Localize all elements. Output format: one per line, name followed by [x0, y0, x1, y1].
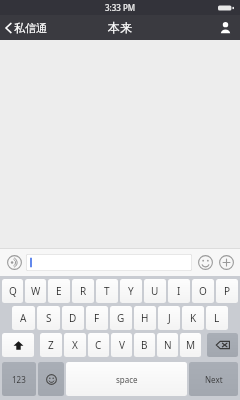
button[interactable]: I [168, 279, 190, 303]
button[interactable]: S [37, 306, 60, 330]
staticText: C [95, 338, 102, 352]
button[interactable]: F [86, 306, 108, 330]
staticText: U [151, 284, 159, 298]
button[interactable]: O [192, 279, 214, 303]
staticText: L [214, 311, 220, 325]
button[interactable]: T [96, 279, 118, 303]
button[interactable]: Voice message [4, 252, 24, 272]
button[interactable]: 私信通 [0, 15, 55, 40]
staticText: I [177, 284, 181, 298]
button[interactable]: R [72, 279, 94, 303]
staticText: Y [128, 284, 134, 298]
staticText: G [117, 311, 125, 325]
button[interactable]: A [12, 306, 35, 330]
staticText: B [141, 338, 148, 352]
button[interactable]: E [48, 279, 70, 303]
button[interactable]: space [66, 362, 187, 396]
staticText: D [69, 311, 77, 325]
staticText: M [186, 338, 196, 352]
staticText: R [80, 284, 87, 298]
staticText: T [104, 284, 110, 298]
button[interactable]: W [25, 279, 46, 303]
button[interactable] [26, 254, 192, 271]
staticText: 本来 [108, 20, 132, 35]
button[interactable]: 123 [2, 362, 36, 396]
staticText: W [31, 284, 41, 298]
staticText: N [164, 338, 172, 352]
staticText: V [119, 338, 125, 352]
staticText: A [20, 311, 27, 325]
button[interactable]: C [88, 333, 109, 357]
button[interactable]: Emoji keyboard [38, 362, 64, 396]
staticText: Next [205, 374, 223, 385]
staticText: 私信通 [14, 21, 47, 35]
button[interactable]: G [110, 306, 132, 330]
staticText: F [94, 311, 100, 325]
button[interactable]: More options [216, 252, 236, 272]
button[interactable]: Next [189, 362, 238, 396]
button[interactable]: U [144, 279, 166, 303]
button[interactable]: J [158, 306, 180, 330]
button[interactable]: N [157, 333, 178, 357]
button[interactable]: K [182, 306, 204, 330]
staticText: E [56, 284, 62, 298]
button[interactable]: L [206, 306, 228, 330]
staticText: K [190, 311, 197, 325]
button[interactable]: P [216, 279, 238, 303]
staticText: S [46, 311, 52, 325]
staticText: O [199, 284, 207, 298]
button[interactable]: B [134, 333, 155, 357]
staticText: P [224, 284, 231, 298]
button[interactable]: X [64, 333, 86, 357]
button[interactable]: H [134, 306, 156, 330]
staticText: X [72, 338, 78, 352]
button[interactable]: Q [2, 279, 23, 303]
button[interactable]: Z [40, 333, 62, 357]
staticText: Q [9, 284, 17, 298]
button[interactable]: Contact info [210, 15, 240, 40]
button[interactable]: V [111, 333, 132, 357]
staticText: J [168, 311, 171, 325]
button[interactable]: Shift [2, 333, 34, 357]
staticText: 3:33 PM [105, 2, 136, 13]
staticText: space [116, 374, 138, 385]
staticText: H [141, 311, 149, 325]
button[interactable]: M [180, 333, 201, 357]
button[interactable]: Emoji [195, 252, 215, 272]
staticText: 123 [12, 374, 26, 385]
button[interactable]: Backspace [207, 333, 238, 357]
staticText: Z [48, 338, 54, 352]
button[interactable]: Y [120, 279, 142, 303]
button[interactable]: D [62, 306, 84, 330]
